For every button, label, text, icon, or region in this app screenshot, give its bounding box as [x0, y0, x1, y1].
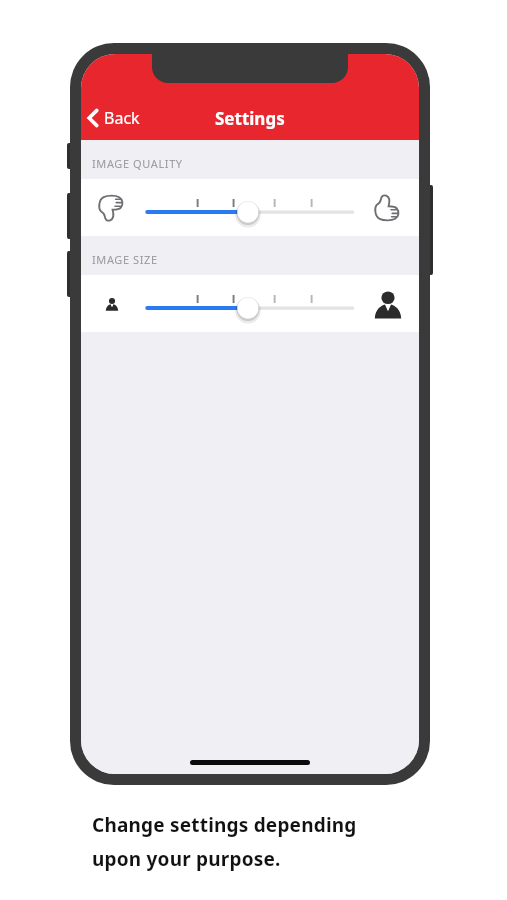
staticText: Change settings depending — [92, 812, 357, 838]
staticText: Back — [104, 107, 140, 129]
button[interactable]: Slider — [143, 179, 357, 236]
button[interactable]: Small size — [105, 297, 119, 311]
staticText: upon your purpose. — [92, 846, 281, 872]
staticText: Settings — [215, 107, 285, 130]
button[interactable]: Large size — [373, 289, 403, 319]
staticText: IMAGE SIZE — [92, 252, 158, 267]
button[interactable]: Back — [81, 96, 150, 140]
button[interactable]: Low quality — [97, 193, 127, 223]
button[interactable]: Slider — [143, 275, 357, 332]
staticText: IMAGE QUALITY — [92, 156, 183, 171]
button[interactable]: High quality — [373, 193, 403, 223]
